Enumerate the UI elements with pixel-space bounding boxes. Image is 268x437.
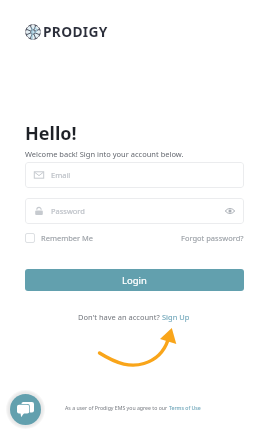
button[interactable]: Terms of Use — [169, 404, 201, 411]
staticText: Welcome back! Sign into your account bel… — [25, 149, 184, 159]
button[interactable]: Email — [25, 162, 244, 188]
staticText: PRODIGY — [43, 22, 108, 41]
staticText: As a user of Prodigy EMS you agree to ou… — [65, 404, 169, 411]
staticText: Sign Up — [162, 312, 190, 322]
staticText: Hello! — [25, 121, 77, 146]
button[interactable]: Chat support — [10, 394, 41, 425]
staticText: Email — [51, 170, 71, 180]
button[interactable]: Login — [25, 269, 244, 291]
staticText: Terms of Use — [169, 404, 201, 411]
staticText: Password — [51, 206, 85, 216]
button[interactable]: Forgot password? — [181, 233, 244, 243]
button[interactable]: Remember Me — [25, 233, 94, 243]
staticText: Remember Me — [41, 233, 94, 243]
button[interactable]: Password — [25, 198, 244, 224]
staticText: Don't have an account? — [78, 312, 162, 322]
staticText: Forgot password? — [181, 233, 244, 243]
button[interactable]: Sign Up — [162, 312, 190, 322]
button[interactable]: Show password — [225, 206, 235, 216]
staticText: Login — [122, 274, 147, 287]
